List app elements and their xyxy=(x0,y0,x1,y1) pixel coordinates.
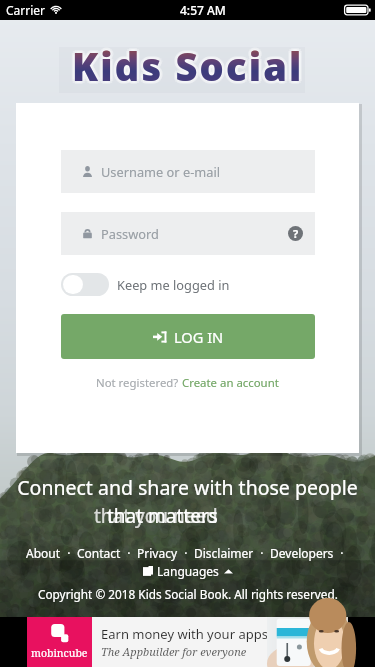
staticText: Kids Social xyxy=(69,40,301,92)
staticText: Carrier xyxy=(6,2,46,18)
staticText: Kids Social xyxy=(70,38,302,90)
staticText: Username or e-mail xyxy=(101,163,221,180)
button[interactable]: Keep me logged in xyxy=(61,273,230,296)
staticText: · xyxy=(178,545,194,561)
staticText: Kids Social xyxy=(74,38,306,90)
button[interactable]: Create an account xyxy=(182,375,279,391)
staticText: Kids Social xyxy=(70,42,302,94)
staticText: Kids Social xyxy=(74,42,306,94)
staticText: The Appbuilder for everyone xyxy=(101,644,247,659)
staticText: Password xyxy=(101,225,159,242)
button[interactable]: Languages xyxy=(143,563,233,579)
button[interactable]: Contact xyxy=(77,545,121,561)
button[interactable]: Password xyxy=(83,212,303,255)
button[interactable]: Developers xyxy=(270,545,334,561)
staticText: Earn money with your apps xyxy=(101,625,267,643)
staticText: LOG IN xyxy=(174,327,224,347)
staticText: · xyxy=(121,545,137,561)
staticText: Copyright © 2018 Kids Social Book. All r… xyxy=(38,586,338,602)
staticText: ? xyxy=(293,226,299,241)
staticText: Not registered? xyxy=(96,375,182,391)
button[interactable]: Username or e-mail xyxy=(83,150,303,193)
staticText: Connect and share with those people xyxy=(17,474,358,501)
staticText: Kids Social xyxy=(72,43,304,95)
staticText: that matters xyxy=(107,503,218,529)
button[interactable]: Disclaimer xyxy=(194,545,254,561)
staticText: Keep me logged in xyxy=(117,276,230,293)
staticText: · xyxy=(334,545,350,561)
staticText: · xyxy=(61,545,77,561)
button[interactable]: mobincube xyxy=(27,617,348,667)
button[interactable]: Password help xyxy=(288,226,303,241)
button[interactable]: Privacy xyxy=(137,545,178,561)
button[interactable]: About xyxy=(26,545,61,561)
staticText: mobincube xyxy=(31,646,88,660)
staticText: Kids Social xyxy=(72,40,304,92)
staticText: 4:57 AM xyxy=(180,2,226,18)
staticText: · xyxy=(254,545,270,561)
staticText: that you need xyxy=(94,503,218,529)
staticText: Kids Social xyxy=(75,40,307,92)
button[interactable]: LOG IN xyxy=(61,314,315,359)
staticText: Kids Social xyxy=(72,37,304,89)
staticText: Languages xyxy=(157,563,219,579)
